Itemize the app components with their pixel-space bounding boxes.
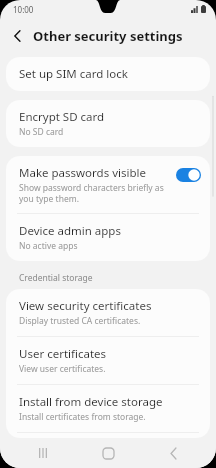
- button[interactable]: Home: [86, 439, 130, 467]
- button[interactable]: Back: [151, 439, 195, 467]
- button[interactable]: Encrypt SD card: [6, 100, 210, 147]
- staticText: Install certificates from storage.: [19, 411, 146, 423]
- staticText: Make passwords visible: [19, 165, 146, 181]
- staticText: Display trusted CA certificates.: [19, 315, 141, 327]
- button[interactable]: Recent apps: [21, 439, 65, 467]
- staticText: Set up SIM card lock: [19, 66, 128, 82]
- staticText: No active apps: [19, 240, 78, 252]
- staticText: Other security settings: [33, 27, 183, 45]
- button[interactable]: User certificates: [6, 337, 210, 384]
- button[interactable]: Make passwords visible: [6, 156, 210, 213]
- staticText: View security certificates: [19, 298, 152, 314]
- staticText: No SD card: [19, 126, 64, 138]
- staticText: 10:00: [13, 4, 34, 15]
- staticText: Credential storage: [19, 272, 93, 284]
- button[interactable]: Device admin apps: [6, 214, 210, 261]
- button[interactable]: Navigate up: [5, 24, 29, 48]
- staticText: User certificates: [19, 346, 107, 362]
- staticText: Show password characters briefly as you …: [19, 182, 171, 204]
- staticText: Device admin apps: [19, 223, 121, 239]
- button[interactable]: View security certificates: [6, 289, 210, 336]
- button[interactable]: Make passwords visible, on: [176, 168, 201, 182]
- staticText: Encrypt SD card: [19, 109, 105, 125]
- button[interactable]: Set up SIM card lock: [6, 57, 210, 91]
- button[interactable]: Install from device storage: [6, 385, 210, 432]
- staticText: Install from device storage: [19, 394, 163, 410]
- staticText: View user certificates.: [19, 363, 106, 375]
